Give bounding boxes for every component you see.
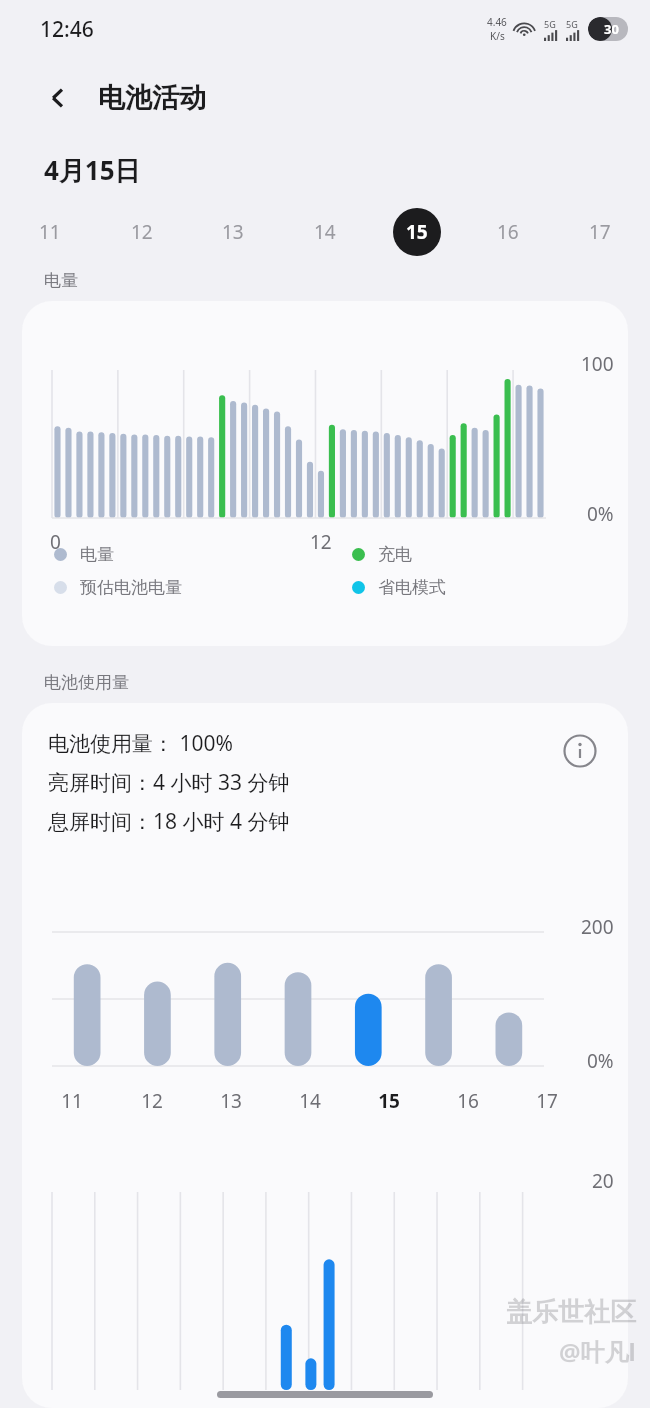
staticText: 盖乐世社区: [506, 1296, 636, 1329]
staticText: 预估电池电量: [80, 577, 182, 598]
staticText: 充电: [378, 544, 412, 565]
staticText: 5G: [544, 18, 556, 30]
button[interactable]: Info: [558, 729, 602, 773]
staticText: 15: [378, 1088, 400, 1114]
staticText: 4月15日: [44, 152, 141, 188]
staticText: 4.46: [487, 15, 507, 29]
button[interactable]: 13: [209, 208, 257, 256]
staticText: 电池使用量: [44, 672, 129, 693]
staticText: K/s: [490, 29, 505, 43]
staticText: 200: [581, 914, 614, 940]
staticText: 30: [604, 20, 619, 38]
button[interactable]: 16: [484, 208, 532, 256]
button[interactable]: 14: [301, 208, 349, 256]
staticText: 14: [299, 1088, 321, 1114]
staticText: 5G: [566, 18, 578, 30]
button[interactable]: Back: [34, 74, 82, 122]
staticText: 12: [131, 219, 153, 245]
staticText: 17: [536, 1088, 558, 1114]
staticText: 0%: [587, 501, 614, 527]
staticText: 12:46: [40, 15, 94, 44]
staticText: 13: [222, 219, 244, 245]
staticText: 电量: [44, 270, 78, 291]
staticText: 12: [310, 529, 332, 555]
staticText: 15: [406, 219, 428, 245]
staticText: 省电模式: [378, 577, 446, 598]
button[interactable]: 11: [26, 208, 74, 256]
staticText: 息屏时间：18 小时 4 分钟: [48, 807, 290, 836]
button[interactable]: 17: [576, 208, 624, 256]
staticText: 11: [61, 1088, 83, 1114]
button[interactable]: 12: [118, 208, 166, 256]
staticText: 电池使用量： 100%: [48, 729, 233, 758]
staticText: 13: [220, 1088, 242, 1114]
staticText: 亮屏时间：4 小时 33 分钟: [48, 768, 290, 797]
staticText: 14: [314, 219, 336, 245]
staticText: @叶凡l: [559, 1335, 636, 1368]
staticText: 电量: [80, 544, 114, 565]
staticText: 100: [581, 351, 614, 377]
staticText: 0%: [587, 1048, 614, 1074]
staticText: 12: [141, 1088, 163, 1114]
staticText: 11: [39, 219, 61, 245]
staticText: 电池活动: [98, 81, 206, 115]
staticText: 17: [589, 219, 611, 245]
button[interactable]: 100: [22, 301, 628, 646]
staticText: 16: [457, 1088, 479, 1114]
staticText: 20: [592, 1168, 614, 1194]
button[interactable]: 15: [393, 208, 441, 256]
staticText: 0: [50, 529, 61, 555]
staticText: 16: [497, 219, 519, 245]
